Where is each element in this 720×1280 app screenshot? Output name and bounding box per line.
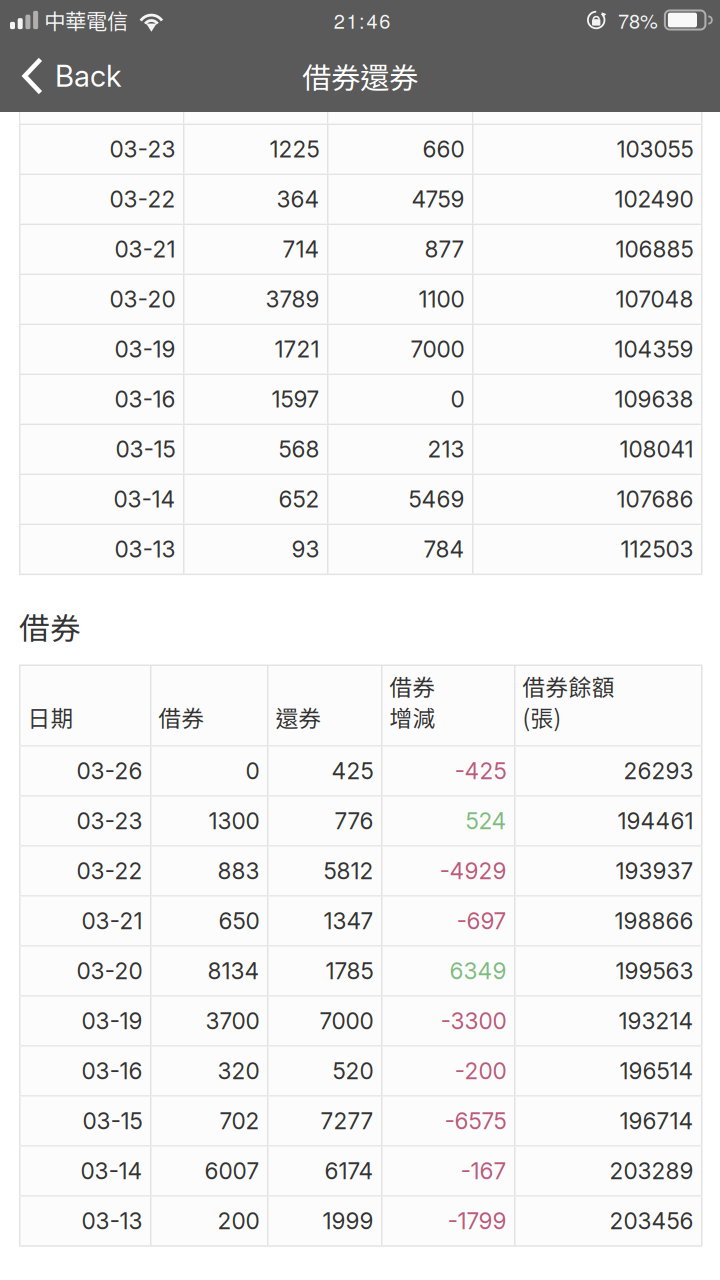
staticText: 7277 [320,1107,373,1135]
staticText: 877 [424,236,464,263]
staticText: 03-20 [76,957,142,985]
staticText: 還券 [275,700,321,733]
staticText: 425 [331,757,373,785]
staticText: 196514 [619,1057,693,1085]
staticText: 5812 [323,857,373,885]
staticText: -3300 [440,1007,506,1035]
staticText: -425 [454,757,506,785]
staticText: 106885 [615,236,693,263]
staticText: 03-13 [114,536,175,563]
staticText: 203289 [609,1157,693,1185]
staticText: 03-21 [114,236,175,263]
staticText: 320 [217,1057,259,1085]
staticText: 03-14 [113,486,175,513]
staticText: 520 [332,1057,373,1085]
button[interactable]: Back [0,40,138,112]
staticText: 03-13 [81,1207,142,1235]
staticText: 借券 [19,604,81,648]
staticText: -1799 [447,1207,506,1235]
staticText: 日期 [27,700,73,733]
staticText: 883 [217,857,259,885]
staticText: 03-15 [82,1107,142,1135]
staticText: 3700 [205,1007,259,1035]
staticText: 4759 [411,186,464,213]
staticText: (張) [522,700,561,733]
staticText: 652 [278,486,319,513]
staticText: 6349 [449,957,506,985]
staticText: 776 [334,807,373,835]
staticText: 03-16 [114,386,175,413]
staticText: 03-19 [81,1007,142,1035]
staticText: 650 [218,907,259,935]
staticText: 1347 [323,907,373,935]
staticText: 364 [276,186,319,213]
staticText: 93 [291,536,319,563]
staticText: 0 [245,757,259,785]
staticText: -200 [454,1057,506,1085]
staticText: 5469 [408,486,464,513]
staticText: 6174 [324,1157,373,1185]
staticText: 03-23 [76,807,142,835]
staticText: 107048 [615,286,693,313]
staticText: 03-22 [76,857,142,885]
staticText: 198866 [614,907,693,935]
staticText: 524 [465,807,506,835]
staticText: 102490 [614,186,693,213]
staticText: 213 [427,436,464,463]
staticText: 78% [618,6,658,34]
staticText: 104359 [614,336,693,363]
staticText: 660 [422,136,464,163]
staticText: 8134 [207,957,259,985]
staticText: 借券還券 [302,55,418,97]
staticText: 568 [278,436,319,463]
staticText: 1721 [274,336,319,363]
staticText: 108041 [619,436,693,463]
staticText: 7000 [410,336,464,363]
staticText: 借券 [158,700,204,733]
staticText: 3789 [265,286,319,313]
staticText: 1785 [325,957,373,985]
staticText: 03-22 [109,186,175,213]
staticText: 109638 [614,386,693,413]
staticText: 203456 [609,1207,693,1235]
staticText: 03-26 [76,757,142,785]
staticText: 03-21 [81,907,142,935]
staticText: 03-14 [80,1157,142,1185]
staticText: 199563 [615,957,693,985]
staticText: 21:46 [334,6,390,34]
staticText: 714 [282,236,319,263]
staticText: 03-20 [109,286,175,313]
staticText: 6007 [204,1157,259,1185]
staticText: 借券餘額 [522,670,614,702]
staticText: 194461 [617,807,693,835]
staticText: 增減 [389,700,435,733]
staticText: 1225 [269,136,319,163]
staticText: 03-23 [109,136,175,163]
staticText: 03-15 [115,436,175,463]
staticText: -4929 [439,857,506,885]
staticText: 196714 [619,1107,693,1135]
staticText: 1100 [418,286,464,313]
staticText: 中華電信 [44,5,128,35]
staticText: 103055 [616,136,693,163]
staticText: 1999 [322,1207,373,1235]
staticText: 112503 [620,536,693,563]
staticText: 702 [219,1107,259,1135]
staticText: 0 [450,386,464,413]
staticText: -697 [456,907,506,935]
staticText: -6575 [444,1107,506,1135]
staticText: 107686 [616,486,693,513]
staticText: Back [55,58,122,94]
staticText: 03-16 [81,1057,142,1085]
staticText: 26293 [623,757,693,785]
staticText: 1597 [271,386,319,413]
staticText: 借券 [389,670,435,702]
staticText: 200 [217,1207,259,1235]
staticText: 193937 [615,857,693,885]
staticText: 1300 [208,807,259,835]
staticText: -167 [460,1157,506,1185]
staticText: 03-19 [114,336,175,363]
staticText: 193214 [618,1007,693,1035]
staticText: 7000 [319,1007,373,1035]
staticText: 784 [423,536,464,563]
